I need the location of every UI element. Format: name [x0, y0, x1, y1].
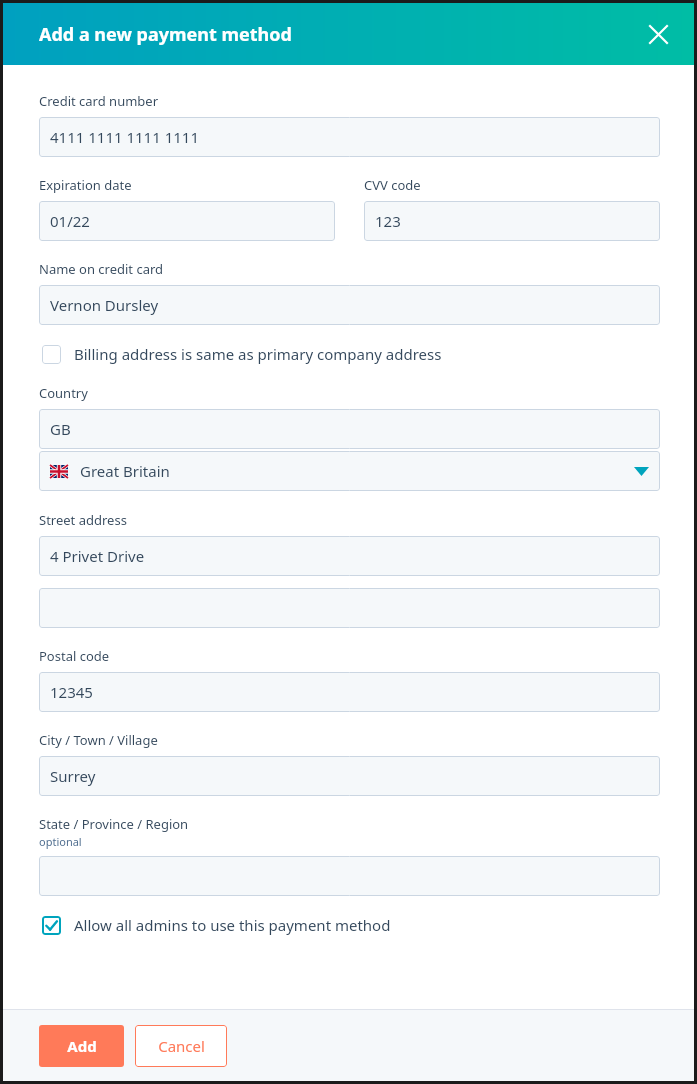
staticText: CVV code: [364, 176, 421, 194]
staticText: 4111 1111 1111 1111: [50, 127, 199, 147]
staticText: Add a new payment method: [39, 22, 292, 47]
staticText: State / Province / Region: [39, 815, 189, 833]
button[interactable]: Allow all admins to use this payment met…: [42, 915, 660, 935]
button[interactable]: 4 Privet Drive: [39, 536, 660, 576]
staticText: Postal code: [39, 647, 110, 665]
button[interactable]: 12345: [39, 672, 660, 712]
staticText: GB: [50, 419, 71, 439]
button[interactable]: 4111 1111 1111 1111: [39, 117, 660, 157]
staticText: Cancel: [158, 1036, 205, 1056]
staticText: Street address: [39, 511, 127, 529]
staticText: Great Britain: [80, 461, 170, 481]
staticText: Add: [67, 1036, 97, 1056]
staticText: Credit card number: [39, 92, 159, 110]
button[interactable]: [39, 588, 660, 628]
staticText: Allow all admins to use this payment met…: [74, 915, 391, 935]
button[interactable]: Vernon Dursley: [39, 285, 660, 325]
button[interactable]: Close: [640, 16, 676, 52]
button[interactable]: GB: [39, 409, 660, 449]
button[interactable]: Billing address is same as primary compa…: [42, 344, 660, 364]
button[interactable]: 01/22: [39, 201, 335, 241]
staticText: Surrey: [50, 766, 96, 786]
staticText: 12345: [50, 682, 93, 702]
staticText: Billing address is same as primary compa…: [74, 344, 442, 364]
button[interactable]: Surrey: [39, 756, 660, 796]
staticText: 4 Privet Drive: [50, 546, 145, 566]
staticText: Country: [39, 384, 88, 402]
staticText: 01/22: [50, 211, 90, 231]
staticText: Expiration date: [39, 176, 132, 194]
staticText: Name on credit card: [39, 260, 164, 278]
staticText: City / Town / Village: [39, 731, 158, 749]
button[interactable]: Add: [39, 1025, 124, 1067]
button[interactable]: Great Britain: [39, 451, 660, 491]
staticText: Vernon Dursley: [50, 295, 159, 315]
staticText: optional: [39, 834, 82, 849]
button[interactable]: 123: [364, 201, 660, 241]
button[interactable]: Cancel: [135, 1025, 227, 1067]
button[interactable]: [39, 856, 660, 896]
staticText: 123: [375, 211, 401, 231]
